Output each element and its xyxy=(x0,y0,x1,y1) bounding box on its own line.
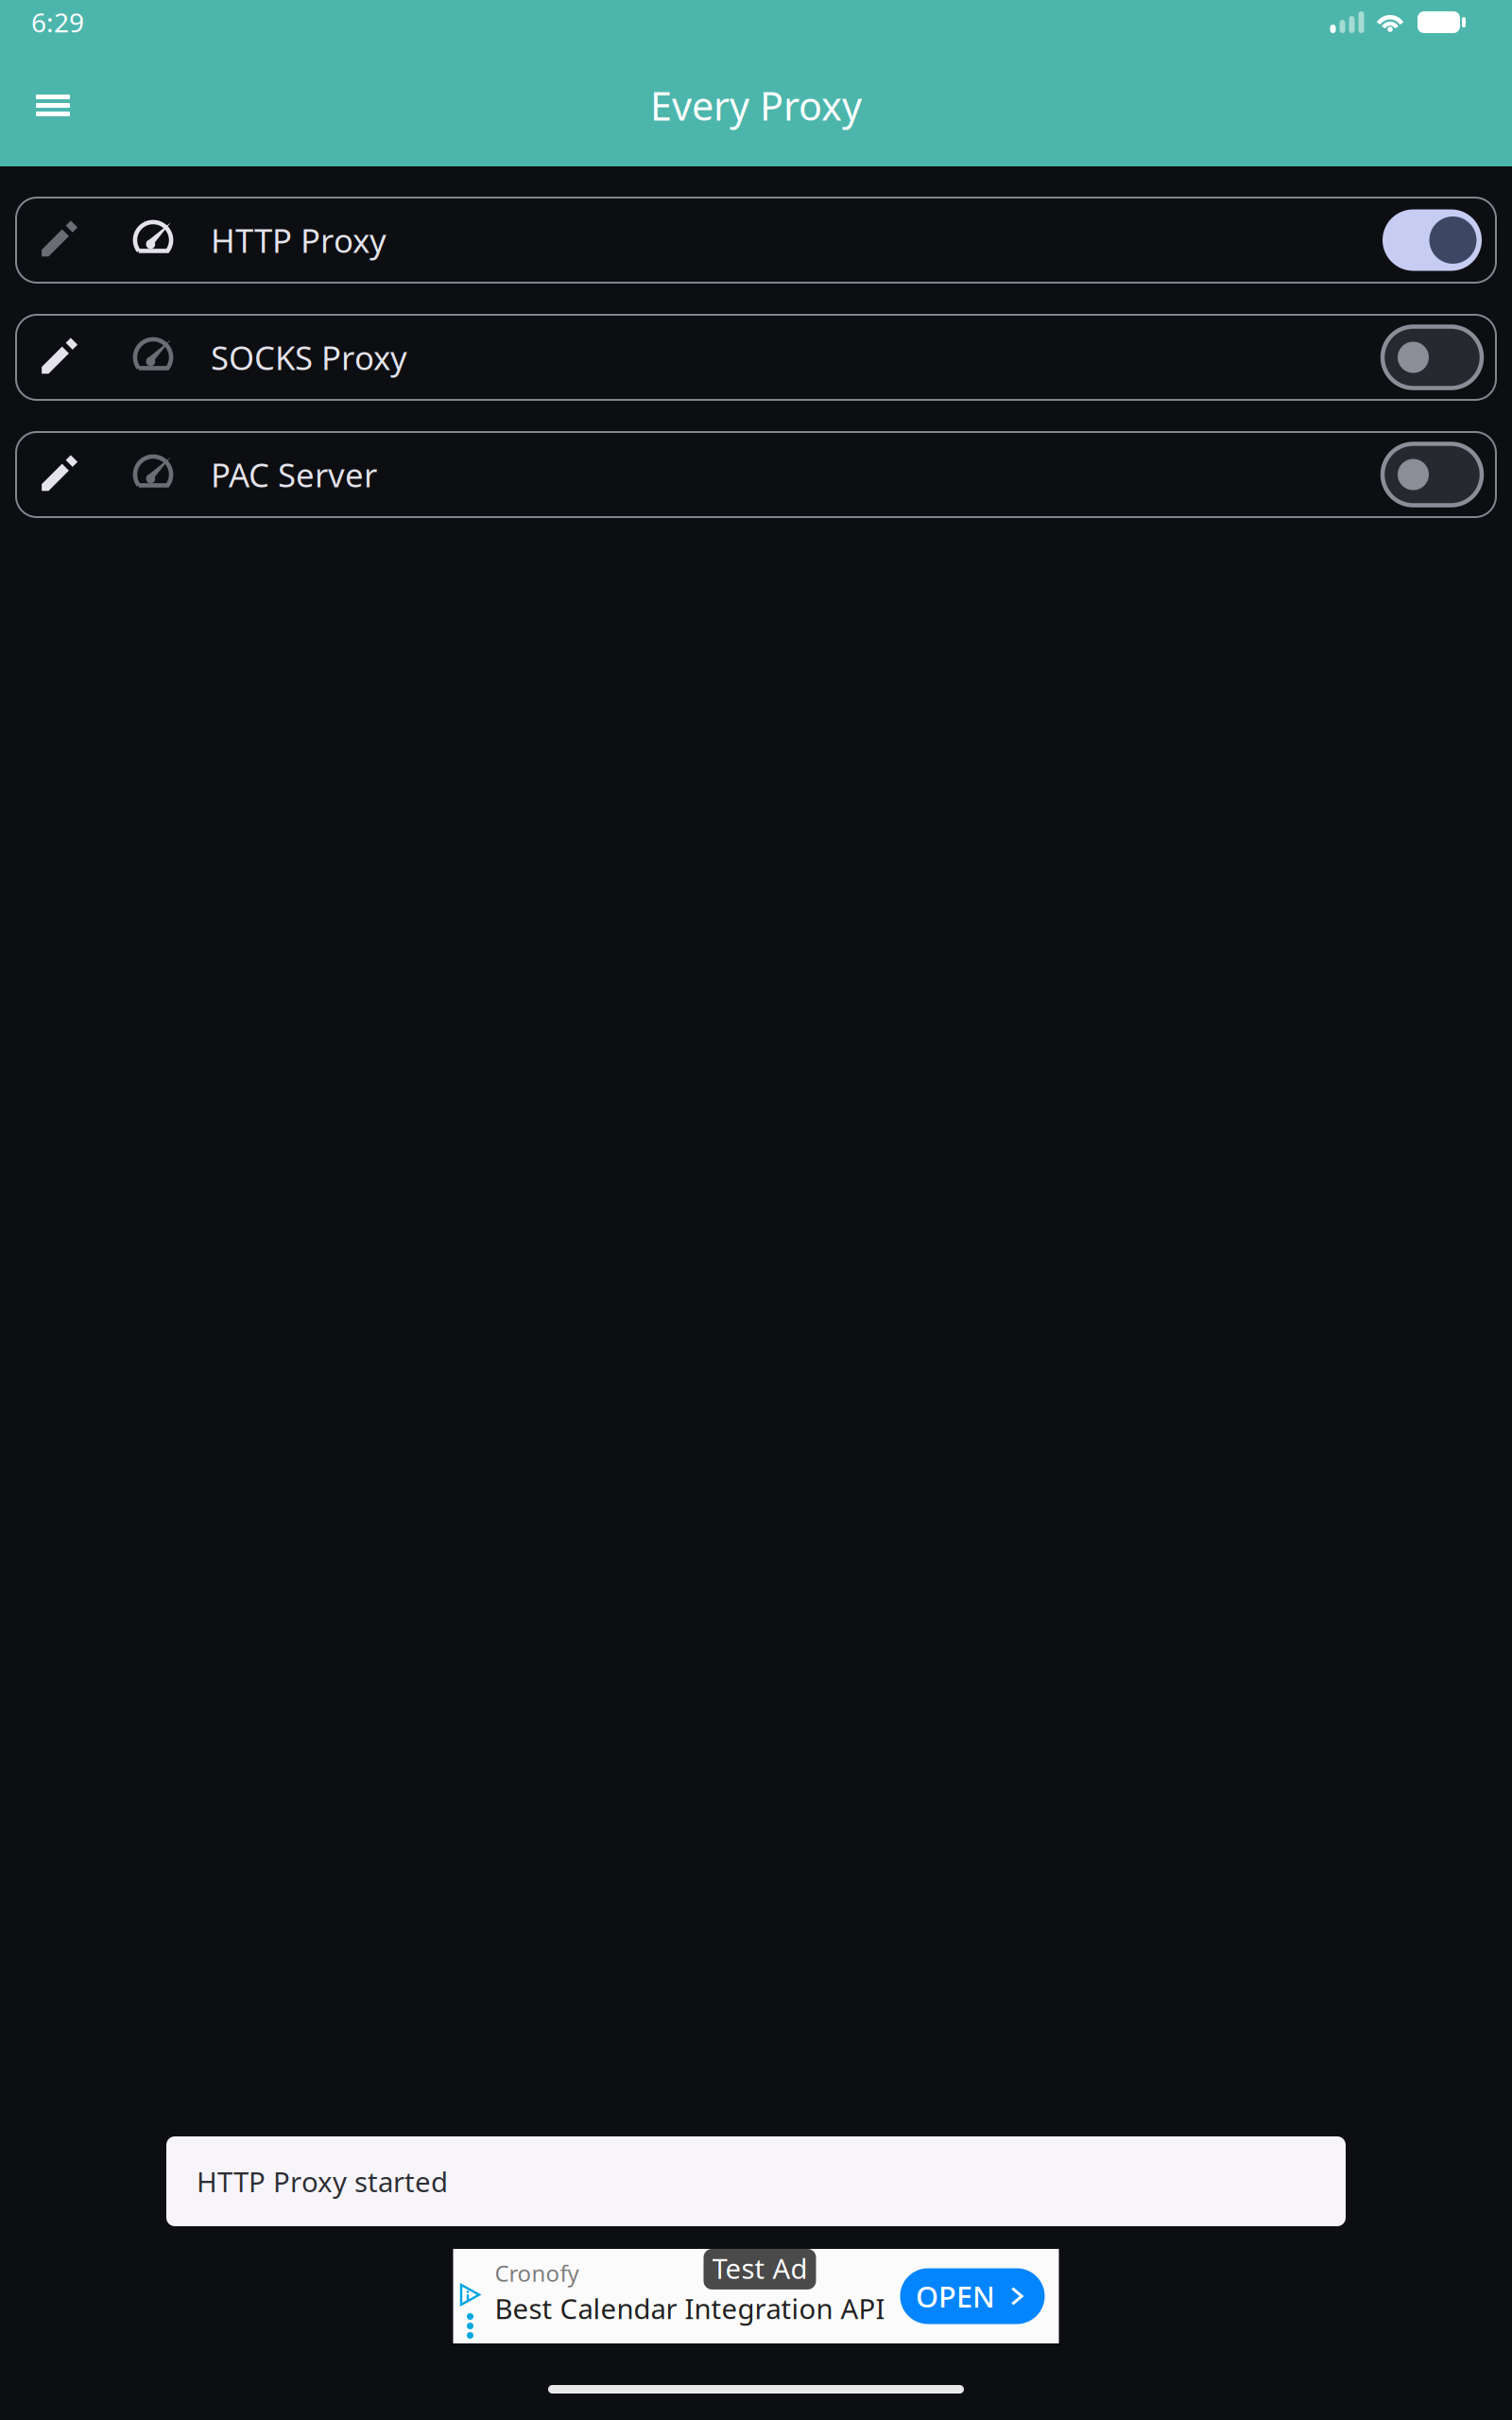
staticText: Best Calendar Integration API xyxy=(495,2290,885,2327)
staticText: Every Proxy xyxy=(650,80,862,131)
button[interactable]: PAC Server xyxy=(16,432,1496,517)
staticText: Test Ad xyxy=(712,2250,808,2287)
button[interactable]: Cronofy xyxy=(453,2249,1059,2343)
staticText: 6:29 xyxy=(31,5,84,40)
staticText: PAC Server xyxy=(211,453,377,496)
button[interactable]: SOCKS Proxy xyxy=(16,315,1496,400)
staticText: HTTP Proxy xyxy=(211,218,387,262)
button[interactable]: Menu xyxy=(17,55,89,156)
staticText: HTTP Proxy started xyxy=(197,2163,448,2200)
staticText: OPEN xyxy=(916,2277,995,2315)
staticText: Cronofy xyxy=(495,2258,579,2288)
button[interactable]: HTTP Proxy xyxy=(16,198,1496,283)
staticText: SOCKS Proxy xyxy=(211,336,407,379)
